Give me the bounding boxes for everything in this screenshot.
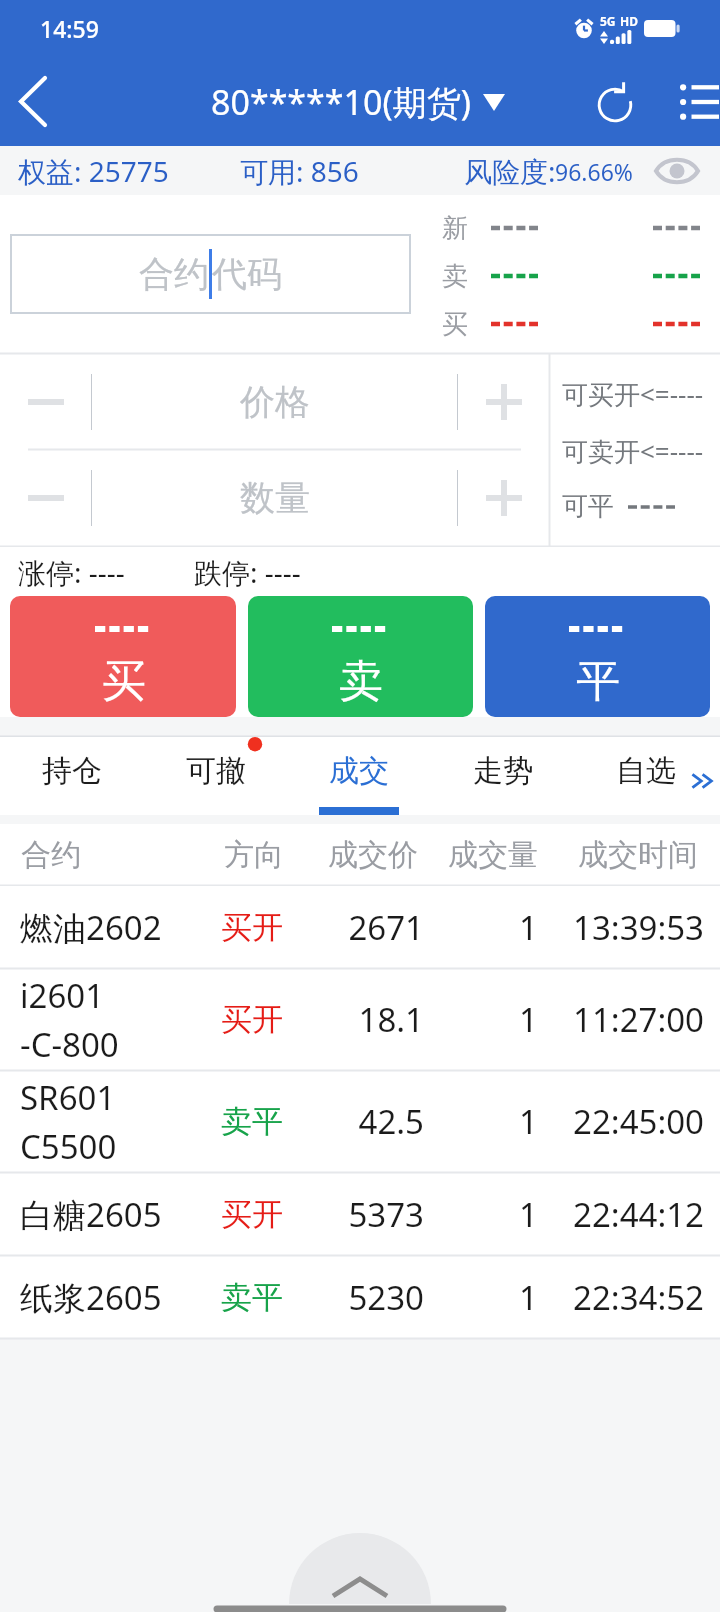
button[interactable]: Menu xyxy=(662,57,720,146)
button[interactable]: Back xyxy=(0,57,66,146)
staticText: 成交价 xyxy=(328,836,418,874)
staticText: 成交时间 xyxy=(578,836,698,874)
button[interactable]: 平 xyxy=(485,596,710,717)
staticText: 涨停: ---- xyxy=(18,553,125,591)
button[interactable]: i2601 -C-800 xyxy=(0,969,720,1070)
button[interactable]: SR601 C5500 xyxy=(0,1071,720,1172)
staticText: 22:34:52 xyxy=(520,1275,704,1320)
staticText: 80*****10(期货) xyxy=(211,79,471,125)
staticText: 96.66% xyxy=(555,156,633,187)
button[interactable]: 合约 xyxy=(10,234,411,314)
button[interactable]: 买 xyxy=(10,596,236,717)
staticText: 风险度: xyxy=(464,152,556,190)
staticText: 卖平 xyxy=(221,1102,283,1141)
staticText: 5G xyxy=(600,13,616,29)
staticText: 自选 xyxy=(616,752,676,790)
staticText: 白糖2605 xyxy=(20,1192,162,1237)
staticText: 合约 xyxy=(139,252,209,296)
button[interactable]: 80*****10(期货) xyxy=(211,79,505,125)
staticText: 走势 xyxy=(473,752,533,790)
staticText: 方向 xyxy=(224,836,284,874)
staticText: 可买开<=---- xyxy=(562,376,704,412)
staticText: 平 xyxy=(576,654,620,709)
staticText: 新 xyxy=(442,212,468,245)
staticText: i2601 -C-800 xyxy=(20,973,119,1066)
staticText: 卖平 xyxy=(221,1278,283,1317)
staticText: 合约 xyxy=(21,836,81,874)
button[interactable]: Increase 数量 xyxy=(458,450,549,545)
staticText: 买开 xyxy=(221,908,283,947)
staticText: 22:44:12 xyxy=(520,1192,704,1237)
staticText: 跌停: ---- xyxy=(194,553,301,591)
staticText: 持仓 xyxy=(42,752,102,790)
button[interactable]: 卖 xyxy=(248,596,473,717)
button[interactable]: More tabs xyxy=(686,761,720,801)
button[interactable]: 燃油2602 xyxy=(0,886,720,968)
staticText: 1 xyxy=(438,1192,538,1237)
staticText: 燃油2602 xyxy=(20,905,162,950)
staticText: 2671 xyxy=(296,905,424,950)
button[interactable]: 纸浆2605 xyxy=(0,1256,720,1338)
staticText: 14:59 xyxy=(40,13,99,44)
staticText: 1 xyxy=(438,997,538,1042)
button[interactable]: 数量 xyxy=(92,450,457,545)
staticText: 5230 xyxy=(296,1275,424,1320)
button[interactable]: 自选 xyxy=(584,737,708,815)
button[interactable]: Decrease 数量 xyxy=(0,450,91,545)
staticText: 18.1 xyxy=(296,997,424,1042)
staticText: 可卖开<=---- xyxy=(562,433,704,469)
staticText: 5373 xyxy=(296,1192,424,1237)
button[interactable]: 白糖2605 xyxy=(0,1173,720,1255)
staticText: 11:27:00 xyxy=(520,997,704,1042)
staticText: 22:45:00 xyxy=(520,1099,704,1144)
button[interactable]: 成交 xyxy=(297,737,421,815)
staticText: 纸浆2605 xyxy=(20,1275,162,1320)
button[interactable]: Refresh xyxy=(573,60,657,149)
staticText: 成交 xyxy=(329,752,389,790)
staticText: 1 xyxy=(438,1099,538,1144)
staticText: 权益: 25775 xyxy=(18,152,169,190)
staticText: 数量 xyxy=(240,476,310,520)
staticText: 42.5 xyxy=(296,1099,424,1144)
button[interactable]: 可撤 xyxy=(154,737,278,815)
staticText: HD xyxy=(620,13,638,29)
staticText: 可用: 856 xyxy=(240,152,359,190)
staticText: 可平 xyxy=(562,490,614,523)
staticText: 卖 xyxy=(442,260,468,293)
staticText: 价格 xyxy=(240,380,310,424)
staticText: SR601 C5500 xyxy=(20,1075,117,1168)
button[interactable]: 价格 xyxy=(92,354,457,449)
staticText: 13:39:53 xyxy=(520,905,704,950)
staticText: 卖 xyxy=(339,654,383,709)
button[interactable]: 走势 xyxy=(441,737,565,815)
staticText: 买 xyxy=(442,308,468,341)
staticText: 1 xyxy=(438,1275,538,1320)
staticText: 1 xyxy=(438,905,538,950)
button[interactable]: Toggle balance visibility xyxy=(645,146,709,195)
staticText: 买 xyxy=(102,654,146,709)
staticText: 代码 xyxy=(212,252,282,296)
staticText: 可撤 xyxy=(186,752,246,790)
staticText: 成交量 xyxy=(448,836,538,874)
button[interactable]: Decrease 价格 xyxy=(0,354,91,449)
staticText: 买开 xyxy=(221,1195,283,1234)
staticText: 买开 xyxy=(221,1000,283,1039)
button[interactable]: Increase 价格 xyxy=(458,354,549,449)
button[interactable]: 持仓 xyxy=(10,737,134,815)
